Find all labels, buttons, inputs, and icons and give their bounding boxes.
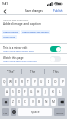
- button[interactable]: Shift: [2, 98, 9, 106]
- staticText: Add an edit summary: [3, 18, 29, 21]
- button[interactable]: Watch this page: [50, 56, 61, 62]
- staticText: Learn more about your Watchlist: [3, 60, 37, 63]
- staticText: M: [52, 100, 55, 104]
- button[interactable]: I: [46, 78, 51, 86]
- button[interactable]: Publish: [50, 7, 67, 15]
- staticText: “The”: [7, 70, 15, 74]
- staticText: Save changes: [25, 9, 43, 13]
- button[interactable]: Watch this page: [0, 54, 67, 64]
- staticText: T: [27, 80, 29, 84]
- button[interactable]: C: [23, 98, 28, 106]
- button[interactable]: D: [17, 88, 21, 96]
- staticText: S: [12, 90, 14, 94]
- staticText: K: [52, 90, 54, 94]
- button[interactable]: This is a minor edit: [0, 44, 67, 54]
- staticText: P: [62, 80, 64, 84]
- staticText: D: [18, 90, 21, 94]
- staticText: This: [53, 70, 59, 74]
- button[interactable]: “The”: [0, 66, 21, 77]
- staticText: Watch this page: [3, 56, 24, 60]
- staticText: V: [32, 100, 34, 104]
- staticText: Added citation: [3, 31, 19, 34]
- button[interactable]: H: [36, 88, 41, 96]
- staticText: Y: [34, 80, 36, 84]
- button[interactable]: A: [5, 88, 9, 96]
- button[interactable]: M: [51, 98, 56, 106]
- button[interactable]: E: [14, 78, 18, 86]
- staticText: Q: [3, 80, 6, 84]
- staticText: R: [21, 80, 23, 84]
- button[interactable]: The: [22, 66, 44, 77]
- staticText: W: [9, 80, 12, 84]
- staticText: G: [30, 90, 33, 94]
- button[interactable]: O: [53, 78, 58, 86]
- staticText: space: [31, 110, 40, 114]
- staticText: Added image and caption: [3, 22, 41, 26]
- button[interactable]: Back: [0, 7, 9, 15]
- staticText: 9:41: [2, 2, 8, 6]
- staticText: Learn more about minor edits: [3, 50, 34, 53]
- staticText: Learn more: [3, 36, 16, 39]
- staticText: O: [54, 80, 57, 84]
- staticText: return: [56, 111, 64, 114]
- staticText: C: [24, 100, 27, 104]
- button[interactable]: F: [23, 88, 27, 96]
- staticText: J: [45, 90, 46, 94]
- button[interactable]: U: [39, 78, 44, 86]
- button[interactable]: Emoji: [11, 108, 16, 116]
- button[interactable]: return: [54, 108, 65, 116]
- button[interactable]: Added citation: [2, 30, 20, 34]
- button[interactable]: X: [17, 98, 21, 106]
- button[interactable]: K: [50, 88, 55, 96]
- staticText: H: [37, 90, 40, 94]
- staticText: I: [48, 80, 50, 84]
- staticText: U: [40, 80, 43, 84]
- button[interactable]: space: [18, 108, 52, 116]
- button[interactable]: P: [60, 78, 65, 86]
- button[interactable]: N: [44, 98, 49, 106]
- staticText: Z: [12, 100, 14, 104]
- button[interactable]: J: [43, 88, 48, 96]
- button[interactable]: Q: [2, 78, 6, 86]
- button[interactable]: V: [30, 98, 35, 106]
- staticText: Publish: [53, 9, 63, 13]
- button[interactable]: Z: [11, 98, 15, 106]
- staticText: E: [15, 80, 17, 84]
- staticText: F: [24, 90, 26, 94]
- staticText: N: [45, 100, 48, 104]
- button[interactable]: Y: [32, 78, 37, 86]
- staticText: 123: [3, 111, 8, 114]
- button[interactable]: L: [57, 88, 62, 96]
- button[interactable]: G: [29, 88, 34, 96]
- button[interactable]: Learn more: [2, 35, 17, 39]
- staticText: The: [30, 70, 36, 74]
- button[interactable]: This is a minor edit: [50, 46, 61, 52]
- button[interactable]: S: [11, 88, 15, 96]
- button[interactable]: T: [26, 78, 30, 86]
- staticText: A: [6, 90, 9, 94]
- staticText: Added image and caption: [22, 31, 49, 34]
- button[interactable]: 123: [2, 108, 9, 116]
- staticText: X: [18, 100, 20, 104]
- button[interactable]: B: [37, 98, 42, 106]
- staticText: B: [38, 100, 41, 104]
- button[interactable]: R: [20, 78, 24, 86]
- button[interactable]: Added image and caption: [21, 30, 50, 34]
- staticText: L: [59, 90, 61, 94]
- button[interactable]: W: [8, 78, 12, 86]
- button[interactable]: Backspace: [58, 98, 65, 106]
- staticText: This is a minor edit: [3, 46, 28, 50]
- button[interactable]: This: [45, 66, 67, 77]
